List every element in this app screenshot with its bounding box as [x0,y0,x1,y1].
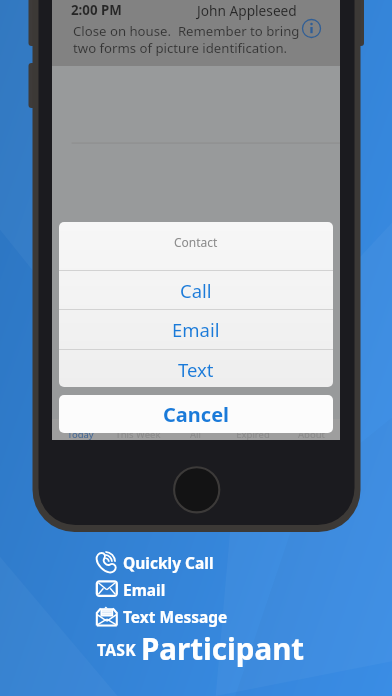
staticText: Text [178,357,214,382]
staticText: Quickly Call [123,552,214,573]
button[interactable]: Cancel [59,395,333,433]
staticText: Call [180,278,212,303]
staticText: Today [67,428,94,441]
staticText: 2:00 PM [71,1,122,19]
staticText: John Appleseed [197,1,297,20]
staticText: Email [123,579,166,600]
staticText: Email [172,317,220,342]
button[interactable]: All [166,419,224,440]
staticText: About [298,428,325,441]
staticText: Text Message [123,606,228,627]
staticText: Close on house. Remember to bring two fo… [73,22,300,56]
staticText: TASK [97,639,136,660]
staticText: Expired [236,428,270,441]
staticText: This Week [115,428,161,441]
button[interactable]: This Week [109,419,166,440]
button[interactable]: Expired [224,419,282,440]
button[interactable]: Call [59,271,333,309]
button[interactable]: Details [302,19,321,38]
staticText: Contact [174,234,218,250]
button[interactable]: Today [52,419,109,440]
button[interactable]: Email [59,310,333,349]
button[interactable]: Text [59,350,333,387]
staticText: Cancel [163,401,230,428]
button[interactable]: About [282,419,340,440]
staticText: All [190,428,201,441]
staticText: Participant [141,628,305,668]
